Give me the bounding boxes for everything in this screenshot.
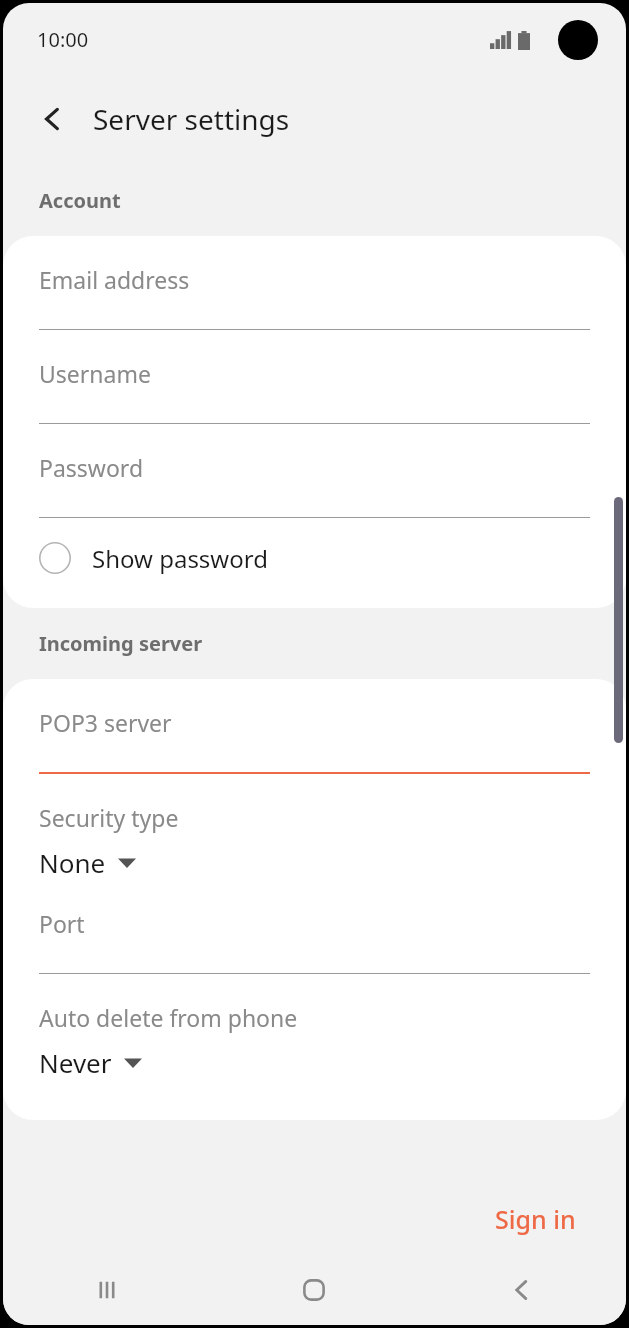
button[interactable]: Auto delete from phone [3,974,626,1080]
staticText: Port [39,908,85,939]
button[interactable]: POP3 server [3,679,626,774]
button[interactable]: Recent apps [3,1255,210,1325]
staticText: Incoming server [39,630,203,657]
button[interactable]: Security type [3,774,626,880]
staticText: Username [39,358,151,389]
button[interactable]: Password [3,424,626,518]
staticText: Never [39,1045,112,1080]
staticText: Account [39,187,121,214]
button[interactable]: Sign in [473,1190,598,1248]
button[interactable]: Show password [3,518,626,598]
staticText: None [39,845,106,880]
button[interactable]: Back [418,1255,626,1325]
button[interactable]: Email address [3,236,626,330]
button[interactable]: Port [3,880,626,974]
staticText: Show password [92,542,268,575]
staticText: Password [39,452,144,483]
staticText: 10:00 [37,26,89,53]
staticText: Server settings [93,100,290,138]
staticText: Auto delete from phone [39,1002,298,1033]
staticText: POP3 server [39,707,172,738]
staticText: Sign in [495,1202,576,1236]
button[interactable]: Home [210,1255,418,1325]
staticText: Email address [39,264,190,295]
button[interactable]: Back [31,97,75,141]
staticText: Security type [39,802,179,833]
button[interactable]: Username [3,330,626,424]
